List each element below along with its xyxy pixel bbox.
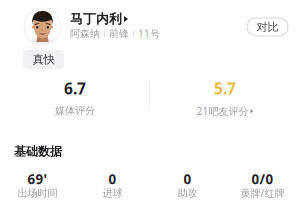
staticText: 真快 (32, 52, 54, 67)
button[interactable]: 5.7 (150, 78, 300, 118)
staticText: 对比 (256, 20, 278, 34)
staticText: 0 (108, 170, 116, 188)
staticText: 进球 (102, 186, 122, 199)
staticText: 马丁内利 (70, 11, 122, 27)
staticText: 黄牌/红牌 (240, 186, 284, 200)
button[interactable]: 对比 (247, 18, 288, 36)
staticText: 前锋 (109, 27, 129, 40)
staticText: 5.7 (214, 78, 236, 99)
staticText: 21吧友评分 (196, 104, 248, 118)
staticText: 阿森纳 (70, 27, 100, 40)
staticText: 6.7 (64, 78, 86, 99)
staticText: 媒体评分 (55, 104, 95, 117)
staticText: 69' (27, 170, 47, 188)
staticText: 出场时间 (17, 186, 57, 199)
staticText: 助攻 (177, 186, 197, 199)
staticText: 0 (183, 170, 191, 188)
staticText: 0/0 (251, 170, 273, 188)
staticText: 11号 (138, 27, 160, 40)
staticText: 基础数据 (14, 144, 62, 159)
